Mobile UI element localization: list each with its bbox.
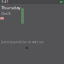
- staticText: Lorem ipsum dolor sit amet con: [1, 40, 44, 44]
- staticText: Thursday: [1, 5, 20, 10]
- staticText: Oct 5: [1, 11, 10, 16]
- staticText: 9:41: [1, 0, 8, 4]
